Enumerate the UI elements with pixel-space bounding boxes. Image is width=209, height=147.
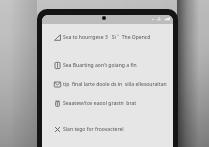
button[interactable]: Reading list [42,60,173,70]
staticText: Seaatew/tov eaool grastn brat [63,100,137,107]
staticText: tip final larte doole ds in siila elleso… [63,81,173,88]
button[interactable]: Delete [42,98,173,108]
staticText: Sva to hourrgese 3 Si ˘ The Opencd [63,34,151,41]
staticText: Slan tego for froovacterel [63,126,124,133]
button[interactable]: Save to homescreen [42,32,173,42]
staticText: Sea Buarting aon't goiang a fin [63,62,137,69]
button[interactable]: Close [42,124,173,134]
button[interactable]: Mail [42,79,173,89]
